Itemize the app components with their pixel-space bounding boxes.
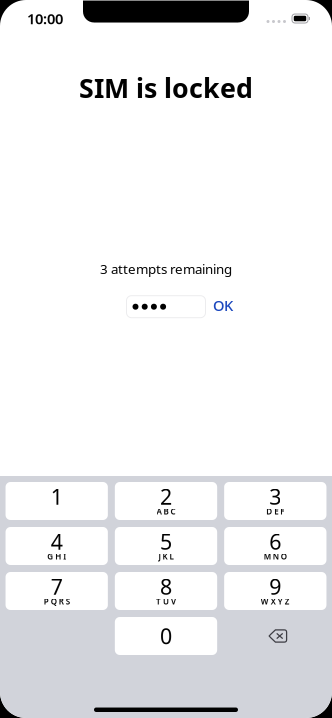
button[interactable]: 7 xyxy=(6,572,108,610)
staticText: 7 xyxy=(51,572,63,601)
staticText: 10:00 xyxy=(27,9,63,28)
button[interactable]: 5 xyxy=(115,527,217,565)
staticText: M N O xyxy=(264,551,287,562)
staticText: G H I xyxy=(47,551,66,562)
button[interactable]: 3 xyxy=(224,482,326,520)
staticText: OK xyxy=(213,295,233,315)
staticText: D E F xyxy=(266,506,284,517)
button[interactable]: 8 xyxy=(115,572,217,610)
staticText: W X Y Z xyxy=(261,596,290,607)
staticText: 2 xyxy=(160,482,172,511)
staticText: T U V xyxy=(156,596,176,607)
staticText: 3 attempts remaining xyxy=(100,260,232,278)
button[interactable]: 6 xyxy=(224,527,326,565)
staticText: P Q R S xyxy=(44,596,70,607)
staticText: A B C xyxy=(156,506,175,517)
button[interactable]: 9 xyxy=(224,572,326,610)
staticText: 1 xyxy=(51,482,63,511)
staticText: 6 xyxy=(269,527,281,556)
button[interactable]: 2 xyxy=(115,482,217,520)
staticText: 9 xyxy=(269,572,281,601)
button[interactable]: 4 xyxy=(6,527,108,565)
staticText: 4 xyxy=(51,527,63,556)
button[interactable]: 0 xyxy=(115,617,217,655)
staticText: SIM is locked xyxy=(79,70,253,105)
staticText: 3 xyxy=(269,482,281,511)
button[interactable]: Delete xyxy=(224,617,326,655)
staticText: 0 xyxy=(160,622,172,650)
button[interactable]: 1 xyxy=(6,482,108,520)
button[interactable]: OK xyxy=(208,296,238,318)
staticText: 8 xyxy=(160,572,172,601)
staticText: J K L xyxy=(158,551,173,562)
staticText: 5 xyxy=(160,527,172,556)
